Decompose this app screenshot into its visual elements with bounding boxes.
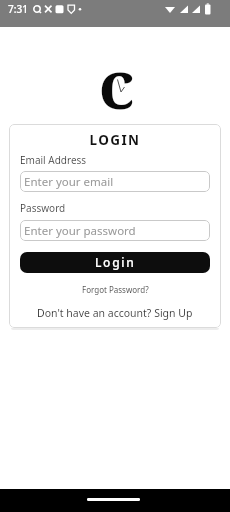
staticText: Login [95,254,136,270]
staticText: Email Address [20,153,87,167]
button[interactable]: Enter your email [20,171,210,192]
button[interactable]: Login [20,252,210,273]
staticText: 7:31 [8,2,28,16]
staticText: C [99,56,135,124]
button[interactable] [0,489,230,512]
button[interactable]: Forgot Password? [82,284,149,295]
staticText: Forgot Password? [82,284,149,295]
staticText: Don't have an account? Sign Up [37,306,193,320]
button[interactable]: Enter your password [20,220,210,241]
staticText: Enter your email [24,174,114,190]
staticText: Password [20,201,66,215]
button[interactable]: Don't have an account? Sign Up [37,306,193,320]
staticText: LOGIN [20,131,210,149]
staticText: Enter your password [24,223,136,239]
